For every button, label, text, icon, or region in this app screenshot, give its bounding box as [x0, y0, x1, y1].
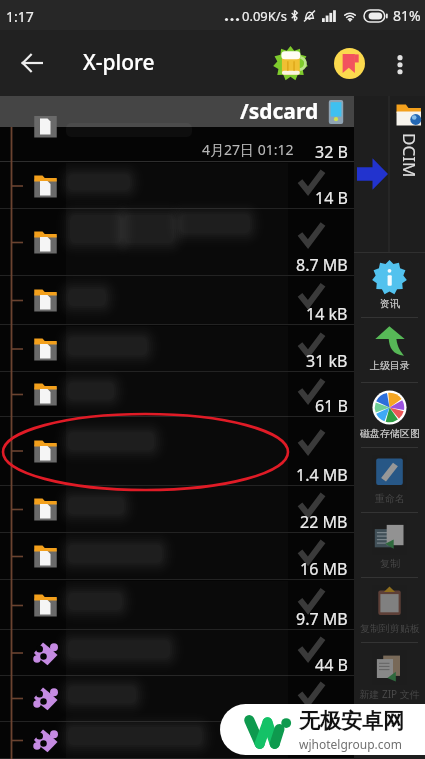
button[interactable]: 61 B — [0, 372, 354, 417]
staticText: 16 MB — [300, 558, 348, 580]
staticText: 4月27日 01:12 — [202, 140, 294, 159]
button[interactable]: /sdcard — [0, 96, 354, 127]
button[interactable]: 14 B — [0, 163, 354, 209]
staticText: 22 MB — [300, 511, 348, 533]
staticText: 新建 ZIP 文件 — [359, 687, 420, 701]
staticText: 9.7 MB — [296, 608, 348, 630]
staticText: 1.4 MB — [296, 464, 348, 486]
button[interactable]: Back — [11, 42, 53, 84]
staticText: 44 B — [315, 654, 348, 676]
staticText: 上级目录 — [370, 359, 410, 372]
staticText: 复制到剪贴板 — [360, 622, 420, 635]
button[interactable]: 磁盘存储区图 — [354, 383, 425, 448]
staticText: 14 B — [315, 187, 348, 209]
staticText: 31 kB — [306, 350, 348, 372]
staticText: 61 B — [315, 395, 348, 417]
button[interactable]: 新建 ZIP 文件 — [354, 643, 425, 708]
button[interactable]: 31 kB — [0, 326, 354, 372]
staticText: 磁盘存储区图 — [360, 427, 420, 440]
staticText: DCIM — [398, 133, 421, 178]
staticText: 无极安卓网 — [299, 708, 404, 734]
button[interactable]: Bookmarks — [330, 44, 368, 82]
button[interactable]: 重命名 — [354, 448, 425, 513]
staticText: 1:17 — [6, 7, 34, 26]
button[interactable]: 上级目录 — [354, 318, 425, 383]
staticText: wjhotelgroup.com — [299, 736, 403, 752]
button[interactable]: Donate — [271, 44, 309, 82]
staticText: 资讯 — [380, 297, 400, 310]
staticText: 8.7 MB — [296, 254, 348, 276]
staticText: 重命名 — [375, 492, 405, 505]
button[interactable]: 9.7 MB — [0, 581, 354, 630]
staticText: /sdcard — [240, 97, 319, 126]
staticText: 81% — [393, 6, 421, 25]
button[interactable] — [0, 675, 354, 722]
staticText: 32 B — [315, 141, 348, 163]
staticText: 复制 — [380, 557, 400, 570]
staticText: 14 kB — [306, 303, 348, 325]
button[interactable]: 资讯 — [354, 253, 425, 318]
button[interactable] — [0, 722, 354, 759]
button[interactable]: 14 kB — [0, 276, 354, 325]
button[interactable]: 复制到剪贴板 — [354, 578, 425, 643]
staticText: X-plore — [83, 48, 155, 77]
button[interactable]: More options — [381, 44, 419, 82]
staticText: 0.09K/s — [242, 7, 287, 25]
button[interactable]: 8.7 MB — [0, 209, 354, 276]
button[interactable]: 44 B — [0, 630, 354, 676]
button[interactable]: 1.4 MB — [0, 416, 354, 486]
button[interactable]: 4月27日 01:12 — [0, 127, 354, 163]
button[interactable]: 22 MB — [0, 486, 354, 533]
button[interactable]: 复制 — [354, 513, 425, 578]
button[interactable]: 16 MB — [0, 533, 354, 580]
